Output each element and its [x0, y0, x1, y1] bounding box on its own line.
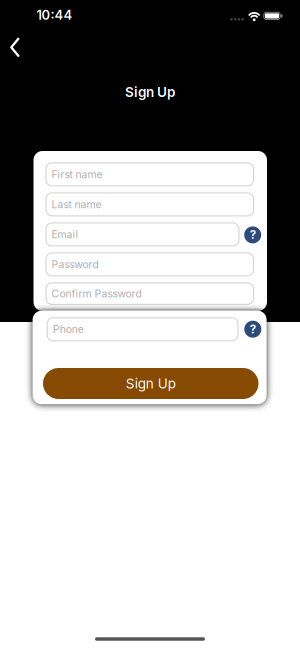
- staticText: Email: [51, 228, 78, 241]
- staticText: Sign Up: [126, 375, 176, 392]
- button[interactable]: Help: [244, 321, 261, 338]
- staticText: ?: [250, 322, 256, 336]
- button[interactable]: Sign Up: [43, 368, 258, 399]
- staticText: First name: [51, 168, 102, 181]
- staticText: 10:44: [36, 7, 72, 23]
- staticText: Password: [51, 258, 98, 271]
- staticText: Last name: [51, 198, 101, 211]
- staticText: ?: [250, 228, 256, 242]
- staticText: Confirm Password: [51, 287, 141, 300]
- button[interactable]: Help: [244, 226, 261, 243]
- staticText: Sign Up: [125, 84, 175, 100]
- staticText: Phone: [53, 323, 84, 336]
- button[interactable]: Back: [3, 34, 29, 60]
